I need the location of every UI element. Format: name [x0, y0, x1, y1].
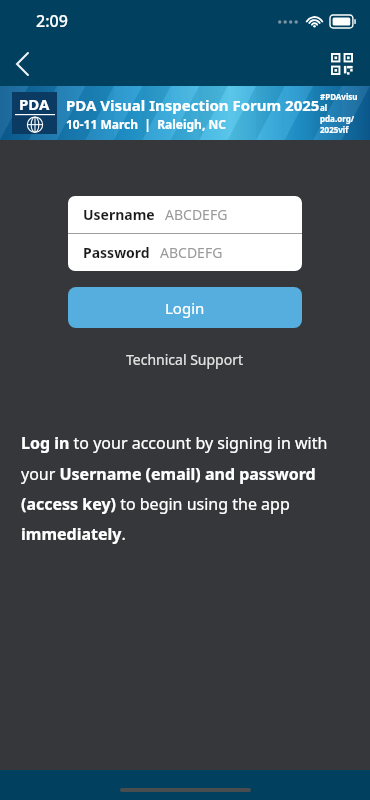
- staticText: ABCDEFG: [165, 205, 228, 224]
- button[interactable]: Password: [68, 234, 302, 271]
- staticText: ABCDEFG: [160, 243, 223, 262]
- staticText: PDA: [19, 94, 50, 114]
- staticText: 2:09: [36, 10, 68, 32]
- button[interactable]: Technical Support: [116, 347, 254, 372]
- button[interactable]: Login: [68, 287, 302, 328]
- button[interactable]: Username: [68, 196, 302, 233]
- staticText: Password: [83, 243, 150, 262]
- staticText: PDA Visual Inspection Forum 2025: [66, 95, 320, 115]
- button[interactable]: Scan QR code: [324, 46, 360, 82]
- staticText: #PDAvisual: [320, 91, 362, 113]
- button[interactable]: Back: [0, 42, 44, 86]
- staticText: Technical Support: [126, 350, 244, 369]
- staticText: pda.org/2025vif: [320, 113, 362, 135]
- staticText: 10-11 March | Raleigh, NC: [66, 116, 226, 132]
- staticText: Login: [165, 298, 205, 318]
- staticText: Log in to your account by signing in wit…: [21, 432, 349, 544]
- staticText: Username: [83, 205, 155, 224]
